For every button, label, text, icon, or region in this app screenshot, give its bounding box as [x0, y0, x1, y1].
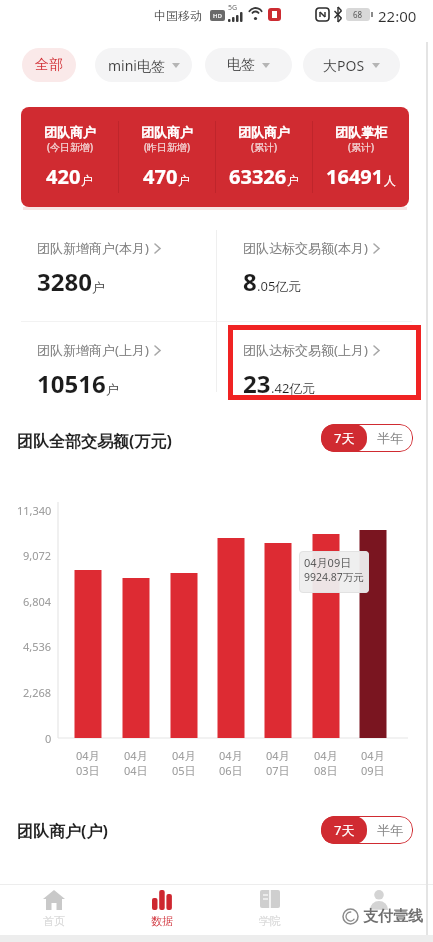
staticText: 04月: [266, 748, 290, 763]
staticText: 团队商户: [141, 124, 193, 140]
staticText: 2,268: [23, 685, 52, 700]
button[interactable]: 电签: [205, 48, 292, 82]
button[interactable]: 团队新增商户(本月): [37, 239, 161, 298]
staticText: .05亿元: [257, 277, 302, 295]
staticText: 户: [106, 381, 119, 397]
staticText: 04月: [76, 748, 100, 763]
staticText: 大POS: [323, 56, 365, 75]
staticText: 63326: [229, 163, 287, 190]
staticText: 04月09日: [304, 555, 352, 570]
staticText: 470: [143, 163, 178, 190]
button[interactable]: 全部: [22, 48, 76, 82]
staticText: (今日新增): [47, 140, 93, 154]
staticText: (累计): [251, 140, 277, 154]
staticText: HD: [213, 12, 222, 20]
button[interactable]: 7天: [321, 424, 367, 452]
staticText: 22:00: [378, 6, 417, 26]
staticText: 电签: [227, 56, 255, 74]
staticText: 户: [81, 173, 93, 188]
staticText: 全部: [35, 56, 63, 74]
staticText: 4,536: [23, 639, 52, 654]
staticText: 团队新增商户(上月): [37, 341, 149, 359]
staticText: 团队掌柜: [335, 124, 387, 140]
staticText: 团队新增商户(本月): [37, 239, 149, 257]
staticText: .42亿元: [271, 379, 316, 397]
staticText: 团队全部交易额(万元): [17, 430, 172, 452]
button[interactable]: 学院: [246, 890, 294, 940]
staticText: 数据: [151, 914, 173, 928]
staticText: 10516: [37, 367, 106, 400]
staticText: 半年: [377, 430, 403, 446]
staticText: 11,340: [17, 503, 52, 518]
staticText: 0: [45, 731, 52, 746]
staticText: 04月: [314, 748, 338, 763]
staticText: 户: [287, 173, 299, 188]
staticText: 04月: [172, 748, 196, 763]
staticText: 420: [46, 163, 81, 190]
staticText: mini电签: [108, 56, 165, 75]
button[interactable]: 团队达标交易额(本月): [243, 239, 380, 298]
staticText: 04月: [219, 748, 243, 763]
staticText: 首页: [43, 914, 65, 928]
staticText: 5G: [228, 3, 238, 13]
staticText: 05日: [172, 763, 196, 778]
staticText: (累计): [348, 140, 374, 154]
button[interactable]: 数据: [138, 890, 186, 940]
staticText: 8: [243, 265, 257, 298]
button[interactable]: 7天: [321, 816, 367, 844]
staticText: 04月: [361, 748, 385, 763]
staticText: 学院: [259, 914, 281, 928]
staticText: 支付壹线: [363, 907, 423, 926]
staticText: 03日: [76, 763, 100, 778]
staticText: 04日: [124, 763, 148, 778]
button[interactable]: mini电签: [95, 48, 192, 82]
button[interactable]: 半年: [367, 816, 413, 844]
button[interactable]: [355, 890, 403, 940]
staticText: 68: [353, 9, 363, 20]
button[interactable]: 半年: [367, 424, 413, 452]
staticText: 团队商户: [44, 124, 96, 140]
staticText: 户: [178, 173, 190, 188]
button[interactable]: 团队新增商户(上月): [37, 341, 161, 400]
staticText: 人: [384, 173, 396, 188]
staticText: 6,804: [23, 594, 52, 609]
staticText: 09日: [361, 763, 385, 778]
staticText: 团队商户(户): [17, 820, 108, 842]
staticText: 团队达标交易额(上月): [243, 341, 368, 359]
button[interactable]: 团队商户: [21, 107, 409, 207]
button[interactable]: 大POS: [303, 48, 400, 82]
staticText: (昨日新增): [144, 140, 190, 154]
staticText: 7天: [334, 429, 355, 447]
button[interactable]: 团队达标交易额(上月): [243, 341, 380, 400]
staticText: 23: [243, 367, 271, 400]
staticText: 9924.87万元: [304, 570, 364, 584]
staticText: 04月: [124, 748, 148, 763]
staticText: 9,072: [23, 548, 52, 563]
staticText: 3280: [37, 265, 92, 298]
staticText: 半年: [377, 822, 403, 838]
staticText: 7天: [334, 821, 355, 839]
staticText: 团队达标交易额(本月): [243, 239, 368, 257]
staticText: 中国移动: [154, 8, 202, 23]
staticText: 08日: [314, 763, 338, 778]
staticText: 07日: [266, 763, 290, 778]
staticText: 16491: [326, 163, 384, 190]
staticText: 06日: [219, 763, 243, 778]
staticText: 户: [92, 279, 105, 295]
button[interactable]: 首页: [30, 890, 78, 940]
staticText: 团队商户: [238, 124, 290, 140]
